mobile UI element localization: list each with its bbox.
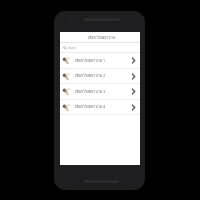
staticText: เลือกโรงพยาบาล 4 bbox=[75, 104, 106, 110]
staticText: เลือกโรงพยาบาล bbox=[88, 35, 116, 41]
button[interactable]: ค้นหา bbox=[60, 43, 140, 52]
staticText: ค้นหา bbox=[68, 45, 77, 50]
staticText: เลือกโรงพยาบาล 1 bbox=[75, 58, 106, 64]
other: Open bbox=[131, 57, 136, 64]
button[interactable]: เลือกโรงพยาบาล 1 bbox=[60, 53, 140, 68]
button[interactable]: เลือกโรงพยาบาล 2 bbox=[60, 69, 140, 83]
staticText: เลือกโรงพยาบาล 3 bbox=[75, 89, 106, 95]
button[interactable]: เลือกโรงพยาบาล 3 bbox=[60, 84, 140, 99]
other: Open bbox=[131, 104, 136, 111]
other: Open bbox=[131, 88, 136, 95]
other: Open bbox=[131, 73, 136, 80]
staticText: เลือกโรงพยาบาล 2 bbox=[75, 73, 106, 79]
button[interactable]: เลือกโรงพยาบาล 4 bbox=[60, 100, 140, 114]
